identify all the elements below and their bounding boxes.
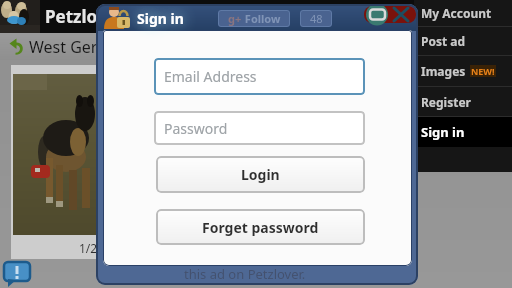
button[interactable]: Forget password: [156, 209, 365, 245]
staticText: g+: [228, 11, 242, 26]
button[interactable]: My Account: [414, 0, 512, 26]
staticText: West Germ: [29, 36, 113, 58]
button[interactable]: Register: [414, 87, 512, 116]
staticText: Sign in: [421, 123, 465, 141]
button[interactable]: [3, 261, 33, 288]
button[interactable]: Password: [154, 111, 365, 145]
button[interactable]: Images: [414, 56, 512, 86]
staticText: Password: [164, 119, 228, 138]
staticText: 1/2: [79, 240, 98, 256]
staticText: Sign in: [137, 9, 184, 28]
staticText: Forget password: [202, 218, 319, 237]
button[interactable]: Post ad: [414, 27, 512, 55]
button[interactable]: West Germ: [0, 33, 512, 60]
staticText: My Account: [421, 5, 492, 21]
staticText: Post ad: [421, 33, 466, 49]
staticText: this ad on Petzlover.: [184, 265, 306, 283]
button[interactable]: Email Address: [154, 58, 365, 95]
staticText: NEW!: [471, 65, 495, 77]
button[interactable]: Sign in: [414, 117, 512, 147]
staticText: Register: [421, 94, 471, 110]
staticText: Petzlover: [45, 5, 125, 28]
staticText: Login: [241, 165, 280, 184]
button[interactable]: [364, 6, 416, 23]
staticText: Follow: [242, 11, 281, 26]
button[interactable]: Login: [156, 156, 365, 193]
staticText: Email Address: [164, 67, 257, 86]
staticText: Images: [421, 63, 466, 79]
staticText: 48: [310, 11, 323, 26]
